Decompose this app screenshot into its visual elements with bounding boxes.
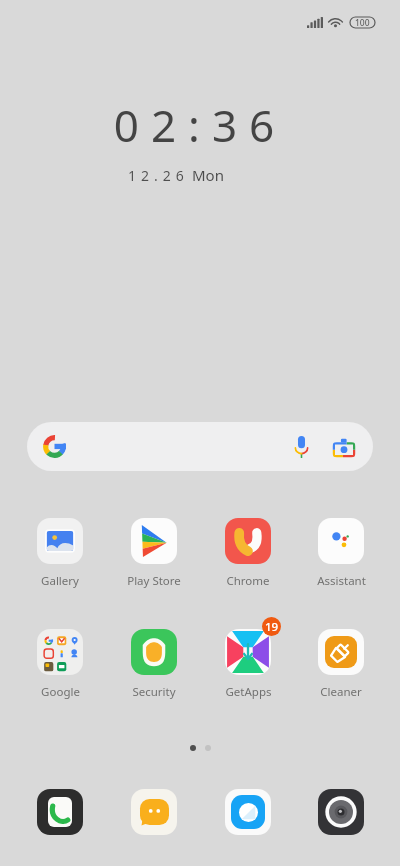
button[interactable]: Voice search	[27, 422, 373, 471]
button[interactable]: 19	[201, 629, 295, 700]
button[interactable]: Gallery	[13, 518, 107, 589]
button[interactable]: Play Store	[107, 518, 201, 589]
staticText: Google	[41, 684, 80, 700]
staticText: Gallery	[41, 573, 79, 589]
button[interactable]: Google	[13, 629, 107, 700]
button[interactable]: Google Lens	[329, 432, 359, 462]
staticText: 12.26	[128, 166, 189, 185]
button[interactable]: Messages	[131, 789, 177, 835]
button[interactable]: Assistant	[295, 518, 387, 589]
button[interactable]: Chrome	[201, 518, 295, 589]
staticText: 100	[355, 17, 370, 28]
staticText: 02:36	[0, 95, 400, 155]
button[interactable]: Camera	[318, 789, 364, 835]
staticText: Chrome	[226, 573, 270, 589]
button[interactable]: Voice search	[286, 432, 316, 462]
button[interactable]: Security	[107, 629, 201, 700]
button[interactable]: Browser	[225, 789, 271, 835]
staticText: Cleaner	[320, 684, 362, 700]
button[interactable]: Phone	[37, 789, 83, 835]
button[interactable]: Cleaner	[295, 629, 387, 700]
staticText: Assistant	[317, 573, 366, 589]
staticText: Security	[132, 684, 176, 700]
staticText: Play Store	[127, 573, 181, 589]
staticText: Mon	[192, 165, 224, 185]
staticText: 19	[265, 619, 279, 635]
staticText: GetApps	[225, 684, 272, 700]
